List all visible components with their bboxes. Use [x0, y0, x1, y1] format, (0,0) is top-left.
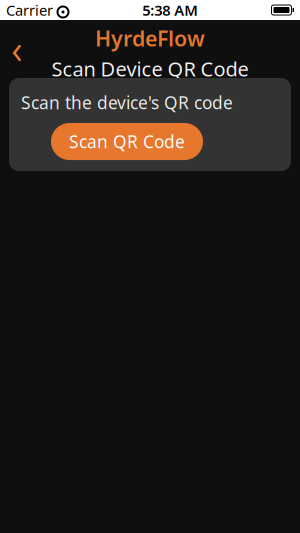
button[interactable]: Back — [0, 34, 34, 72]
staticText: Scan the device's QR code — [21, 91, 233, 114]
staticText: Scan QR Code — [69, 130, 185, 153]
staticText: HyrdeFlow — [95, 24, 205, 52]
staticText: Scan Device QR Code — [51, 55, 248, 82]
staticText: Carrier — [6, 0, 53, 20]
button[interactable]: Scan QR Code — [51, 123, 203, 160]
staticText: 5:38 AM — [142, 0, 198, 20]
